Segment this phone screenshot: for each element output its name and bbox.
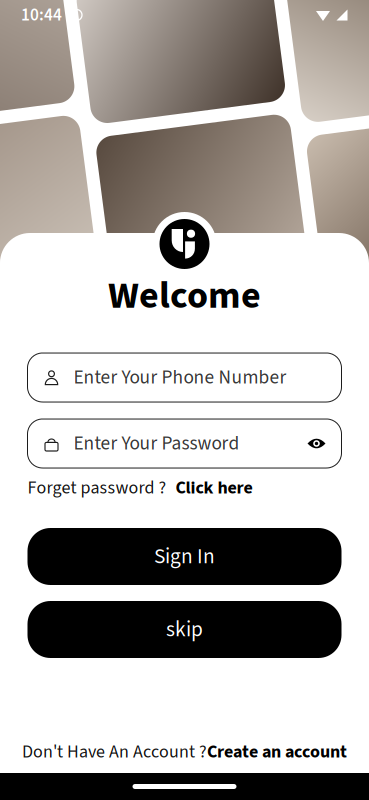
staticText: 10:44 [21, 3, 62, 27]
button[interactable]: Sign In [27, 528, 341, 585]
button[interactable]: skip [27, 601, 341, 658]
staticText: Don't Have An Account ? [22, 739, 207, 765]
staticText: Welcome [108, 269, 261, 323]
staticText: Click here [175, 475, 252, 501]
staticText: Enter Your Phone Number [73, 364, 286, 391]
staticText: Forget password ? [27, 475, 166, 501]
button[interactable]: Create an account [207, 739, 347, 765]
staticText: Enter Your Password [73, 430, 239, 457]
button[interactable]: Click here [166, 475, 252, 501]
staticText: Sign In [154, 541, 215, 572]
button[interactable]: Enter Your Phone Number [27, 353, 341, 402]
staticText: Create an account [207, 739, 347, 765]
staticText: skip [166, 614, 203, 645]
button[interactable]: Enter Your Password [27, 419, 341, 468]
